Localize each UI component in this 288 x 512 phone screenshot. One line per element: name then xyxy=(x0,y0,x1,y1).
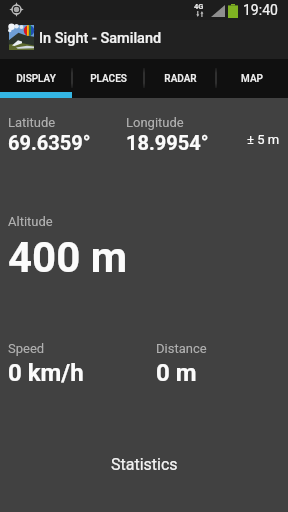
button[interactable]: DISPLAY xyxy=(0,59,72,98)
staticText: 4G xyxy=(194,2,204,11)
staticText: 0 m xyxy=(156,359,197,387)
staticText: Distance xyxy=(156,341,207,356)
staticText: 0 km/h xyxy=(8,359,84,387)
staticText: Altitude xyxy=(8,214,53,229)
button[interactable]: PLACES xyxy=(72,59,144,98)
staticText: PLACES xyxy=(90,73,127,85)
other: GPS active xyxy=(9,2,24,17)
staticText: ± 5 m xyxy=(247,132,280,147)
staticText: Latitude xyxy=(8,115,56,130)
staticText: RADAR xyxy=(164,73,197,85)
button[interactable]: RADAR xyxy=(144,59,216,98)
staticText: 19:40 xyxy=(243,2,278,18)
staticText: Longitude xyxy=(126,115,184,130)
staticText: Statistics xyxy=(111,455,178,474)
staticText: Speed xyxy=(8,341,45,356)
button[interactable]: Statistics xyxy=(0,439,288,489)
staticText: DISPLAY xyxy=(16,73,56,85)
staticText: 400 m xyxy=(8,233,128,282)
staticText: 18.9954° xyxy=(126,131,209,154)
button[interactable]: MAP xyxy=(216,59,288,98)
staticText: 69.6359° xyxy=(8,131,91,154)
staticText: MAP xyxy=(241,73,263,85)
staticText: In Sight - Samiland xyxy=(39,30,162,47)
